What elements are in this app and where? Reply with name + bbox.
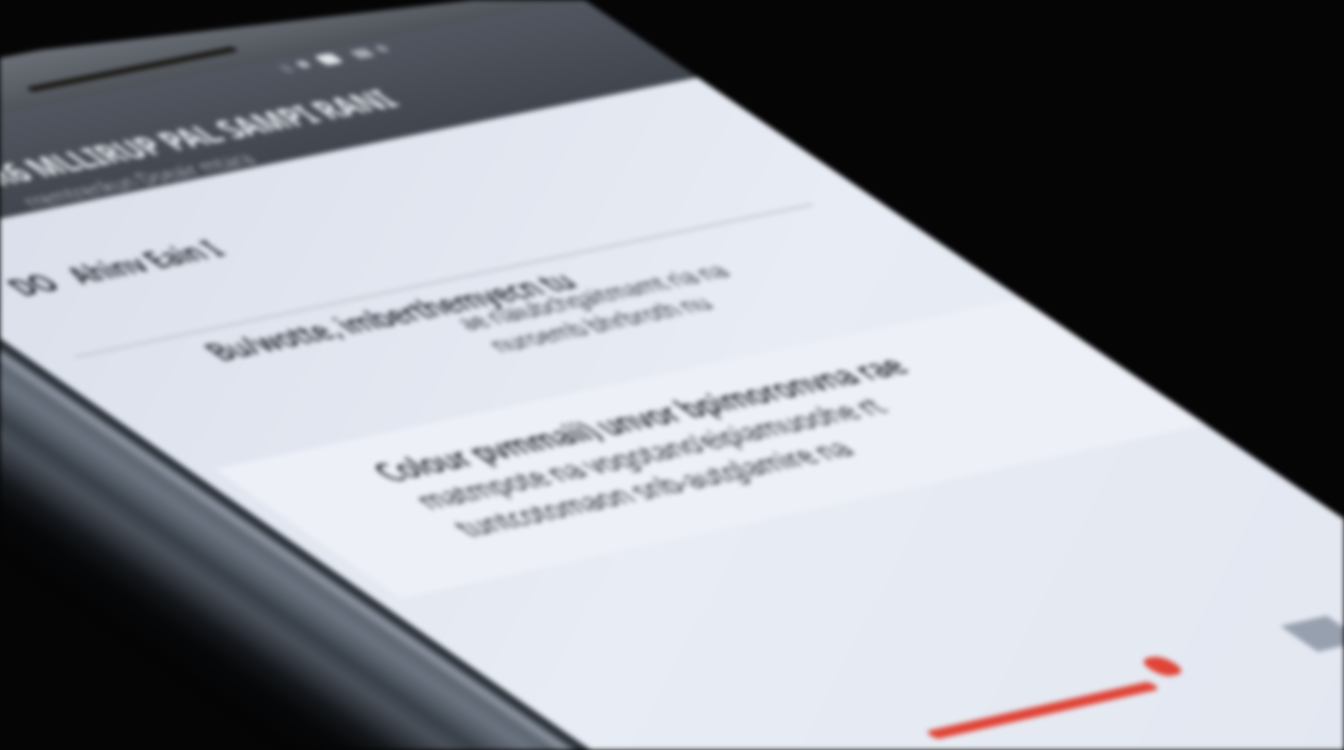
staticText: Colour pvmmaii) unvor bpimoronvna rae: [359, 349, 921, 488]
staticText: R6 MLLIRUP PAL SAMPI RANI: [0, 82, 411, 192]
staticText: Ahinv Eain I: [53, 234, 237, 290]
staticText: matmpote na vogotano'eipiamuoohe rt: [401, 390, 900, 516]
staticText: nuroemb bhrbroth nu: [476, 290, 723, 357]
other: Icon: [1280, 616, 1344, 652]
button[interactable]: Highlight: [924, 681, 1161, 739]
staticText: rremtrenkun Doeair mtara: [10, 146, 264, 211]
staticText: DO: [0, 267, 72, 302]
staticText: ae riaiubchgaitmamt ria na: [444, 258, 740, 335]
staticText: Bu/wotte, imberthemyecn tu: [190, 264, 590, 367]
button[interactable]: DO: [0, 234, 237, 302]
staticText: tuntcotomaon snb-autglamire na: [440, 433, 867, 543]
